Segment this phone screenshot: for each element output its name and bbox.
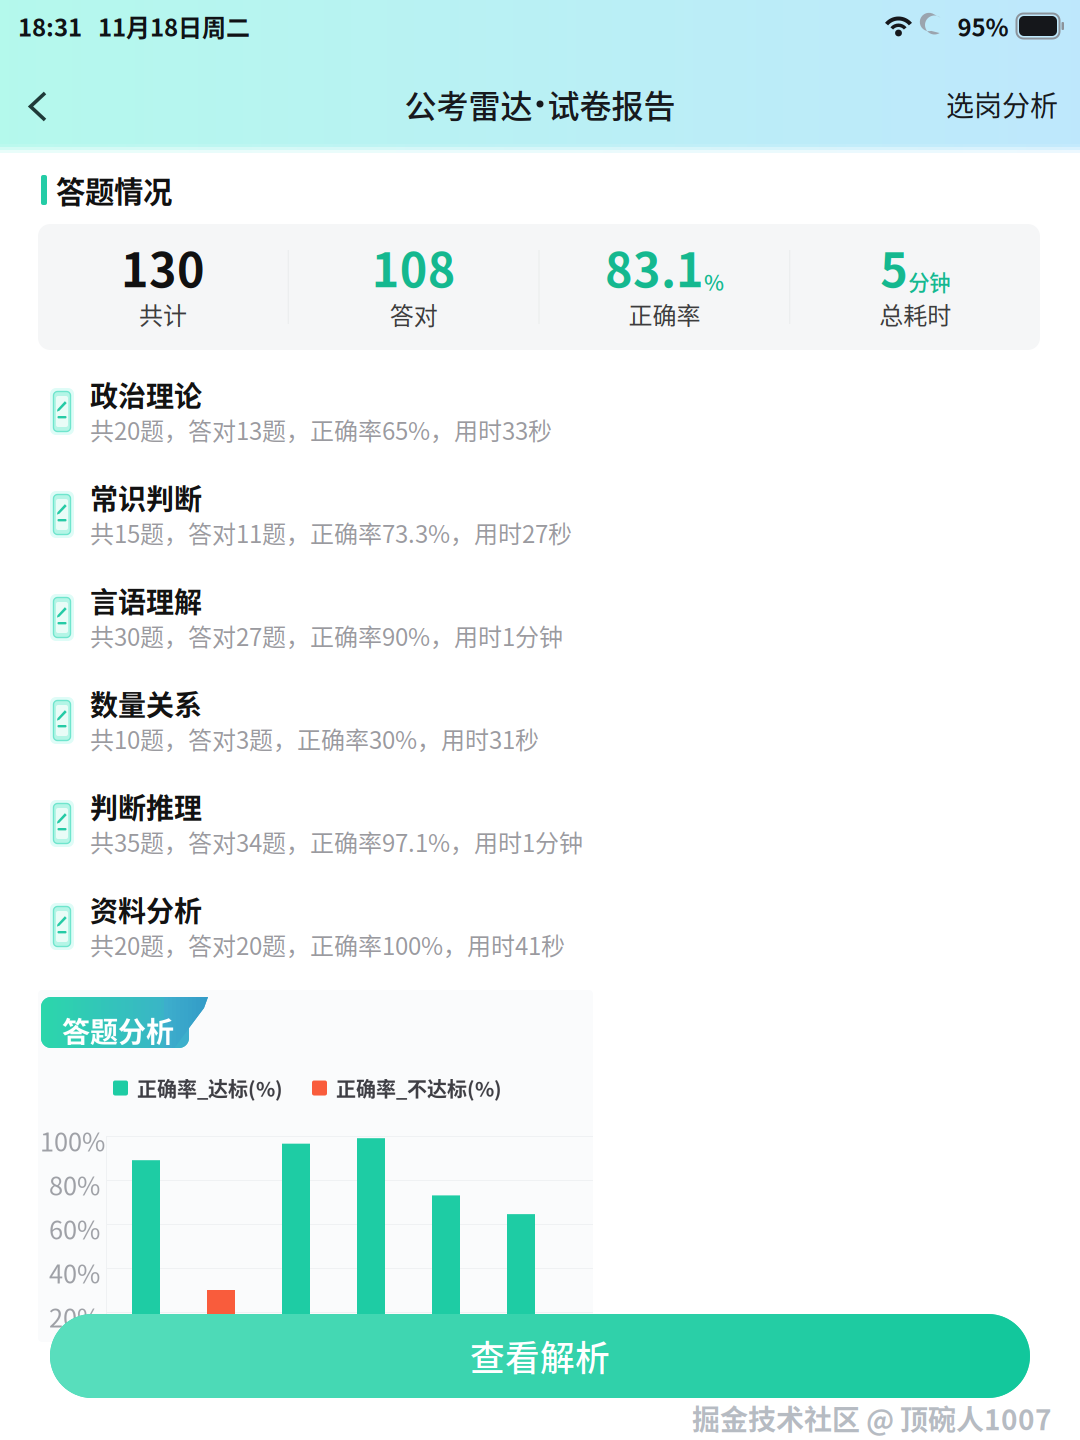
button[interactable]: 政治理论 [0,360,1080,463]
button[interactable]: 查看解析 [50,1314,1030,1398]
staticText: 公考雷达 [404,81,532,127]
staticText: 判断推理 [90,786,202,827]
staticText: 常识判断 [90,477,202,518]
staticText: 查看解析 [470,1331,610,1381]
staticText: 正确率 [628,297,700,331]
staticText: 正确率_达标(%) [137,1073,283,1102]
staticText: 数量关系 [90,683,202,724]
staticText: 100% [40,1122,105,1159]
staticText: 80% [49,1166,100,1203]
button[interactable]: 选岗分析 [946,52,1080,156]
staticText: 130 [121,233,205,301]
staticText: 言语理解 [90,580,202,621]
staticText: 60% [49,1210,100,1247]
staticText: 答题分析 [62,1010,174,1050]
staticText: 答对 [390,297,438,331]
staticText: 18:31 [18,9,82,43]
staticText: 95% [957,9,1008,43]
staticText: 选岗分析 [946,84,1058,124]
staticText: 试卷报告 [547,81,675,127]
button[interactable]: 常识判断 [0,463,1080,566]
staticText: 共30题，答对27题，正确率90%，用时1分钟 [90,618,563,653]
staticText: % [704,266,724,297]
staticText: 正确率_不达标(%) [336,1073,502,1102]
staticText: 分钟 [908,266,950,297]
button[interactable]: 言语理解 [0,566,1080,669]
staticText: 20% [49,1298,100,1335]
button[interactable]: 返回 [0,52,76,156]
button[interactable]: 数量关系 [0,669,1080,772]
staticText: 共10题，答对3题，正确率30%，用时31秒 [90,721,539,756]
staticText: 共15题，答对11题，正确率73.3%，用时27秒 [90,515,572,550]
staticText: 83.1 [605,233,704,301]
staticText: 总耗时 [879,297,951,331]
button[interactable]: 判断推理 [0,772,1080,875]
staticText: 5 [880,233,908,301]
staticText: 掘金技术社区 @ 顶碗人1007 [692,1398,1052,1438]
staticText: 共20题，答对20题，正确率100%，用时41秒 [90,927,565,962]
staticText: 108 [372,233,456,301]
staticText: 共计 [139,297,187,331]
staticText: 资料分析 [90,889,202,930]
staticText: 共35题，答对34题，正确率97.1%，用时1分钟 [90,824,583,859]
staticText: 11月18日周二 [98,9,250,43]
staticText: 40% [49,1254,100,1291]
staticText: 政治理论 [90,374,202,415]
button[interactable]: 资料分析 [0,875,1080,978]
staticText: 共20题，答对13题，正确率65%，用时33秒 [90,412,552,447]
staticText: 答题情况 [56,169,172,211]
